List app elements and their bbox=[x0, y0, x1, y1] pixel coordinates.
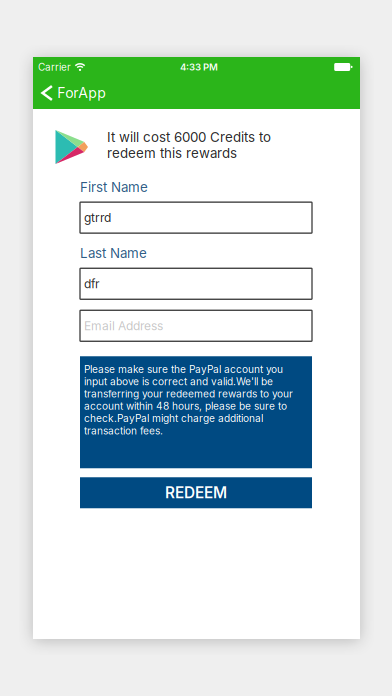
staticText: ForApp bbox=[57, 84, 106, 101]
staticText: It will cost 6000 Credits to redeem this… bbox=[107, 129, 271, 161]
staticText: Please make sure the PayPal account you … bbox=[84, 363, 293, 437]
staticText: Carrier bbox=[38, 61, 71, 73]
staticText: 4:33 PM bbox=[180, 61, 218, 73]
button[interactable]: REDEEM bbox=[80, 477, 312, 508]
staticText: gtrrd bbox=[84, 210, 111, 225]
staticText: dfr bbox=[84, 276, 100, 291]
staticText: Email Address bbox=[84, 318, 163, 333]
staticText: Last Name bbox=[80, 245, 147, 261]
staticText: REDEEM bbox=[165, 483, 227, 502]
staticText: First Name bbox=[80, 179, 148, 195]
button[interactable]: ForApp bbox=[33, 77, 114, 109]
